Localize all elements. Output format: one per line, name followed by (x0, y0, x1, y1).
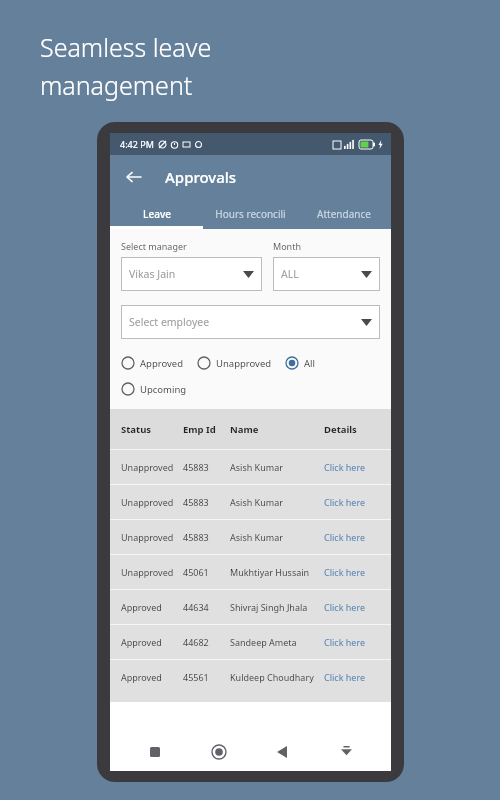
button[interactable]: Click here (324, 566, 380, 578)
staticText: Emp Id (183, 423, 230, 436)
staticText: Approved (140, 357, 184, 370)
staticText: Approved (121, 671, 183, 683)
staticText: Unapproved (216, 357, 272, 370)
staticText: Seamless leave (40, 30, 212, 64)
staticText: Select employee (129, 315, 210, 329)
staticText: Month (273, 240, 301, 252)
button[interactable]: Hours reconcili (203, 199, 297, 229)
staticText: Hours reconcili (215, 207, 286, 221)
button[interactable]: Approved (121, 356, 184, 370)
staticText: Select manager (121, 240, 187, 252)
staticText: Unapproved (121, 531, 183, 543)
staticText: Approved (121, 636, 183, 648)
staticText: 45883 (183, 496, 230, 508)
button[interactable]: Approved (110, 590, 391, 624)
staticText: Asish Kumar (230, 496, 324, 508)
staticText: Details (324, 423, 380, 436)
button[interactable]: Back (264, 734, 300, 770)
staticText: Shivraj Singh Jhala (230, 601, 324, 613)
staticText: Sandeep Ameta (230, 636, 324, 648)
staticText: Asish Kumar (230, 461, 324, 473)
button[interactable]: Unapproved (110, 520, 391, 554)
staticText: Unapproved (121, 496, 183, 508)
button[interactable]: Click here (324, 531, 380, 543)
button[interactable]: All (285, 356, 315, 370)
staticText: Approvals (165, 167, 237, 187)
staticText: 45561 (183, 671, 230, 683)
staticText: Leave (143, 207, 171, 221)
button[interactable]: Click here (324, 496, 380, 508)
button[interactable]: Hide keyboard (328, 734, 364, 770)
staticText: Name (230, 423, 324, 436)
staticText: Kuldeep Choudhary (230, 671, 324, 683)
button[interactable]: ALL (273, 257, 380, 291)
button[interactable]: Click here (324, 461, 380, 473)
button[interactable]: Approved (110, 625, 391, 659)
staticText: Asish Kumar (230, 531, 324, 543)
staticText: Attendance (317, 207, 371, 221)
staticText: Approved (121, 601, 183, 613)
staticText: Upcoming (140, 383, 187, 396)
button[interactable]: Approved (110, 660, 391, 694)
button[interactable]: Click here (324, 601, 380, 613)
staticText: 44634 (183, 601, 230, 613)
staticText: management (40, 68, 193, 102)
button[interactable]: Select employee (121, 305, 380, 339)
button[interactable]: Attendance (297, 199, 391, 229)
staticText: 45883 (183, 461, 230, 473)
button[interactable]: Unapproved (110, 450, 391, 484)
button[interactable]: Unapproved (110, 555, 391, 589)
button[interactable]: Recents (137, 734, 173, 770)
staticText: All (304, 357, 315, 370)
staticText: ALL (281, 267, 299, 281)
staticText: 44682 (183, 636, 230, 648)
staticText: Status (121, 423, 183, 436)
button[interactable]: Vikas Jain (121, 257, 262, 291)
button[interactable]: Click here (324, 671, 380, 683)
staticText: 4:42 PM (120, 138, 154, 150)
button[interactable]: Unapproved (110, 485, 391, 519)
staticText: Unapproved (121, 461, 183, 473)
staticText: Vikas Jain (129, 267, 176, 281)
button[interactable]: Back (118, 161, 150, 193)
button[interactable]: Leave (110, 199, 203, 229)
button[interactable]: Click here (324, 636, 380, 648)
staticText: Mukhtiyar Hussain (230, 566, 324, 578)
staticText: 45883 (183, 531, 230, 543)
button[interactable]: Unapproved (197, 356, 272, 370)
button[interactable]: Upcoming (121, 382, 187, 396)
button[interactable]: Home (201, 734, 237, 770)
staticText: 45061 (183, 566, 230, 578)
staticText: Unapproved (121, 566, 183, 578)
